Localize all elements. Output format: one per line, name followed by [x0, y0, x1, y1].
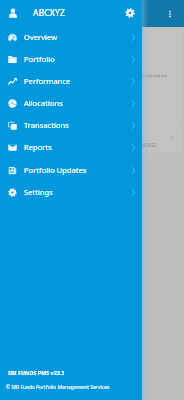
button[interactable]: Performance: [0, 70, 142, 92]
button[interactable]: Reports: [0, 136, 142, 158]
staticText: Portfolio Updates: [24, 165, 87, 175]
staticText: Settings: [24, 187, 53, 197]
button[interactable]: More options: [163, 7, 177, 21]
button[interactable]: Overview: [0, 26, 142, 48]
staticText: 15/08/2022: [133, 142, 157, 148]
button[interactable]: ABCXYZ: [0, 0, 142, 25]
staticText: SBI FUNDS PMS v23.3: [8, 369, 65, 376]
button[interactable]: Portfolio Updates: [0, 159, 142, 181]
button[interactable]: Transactions: [0, 114, 142, 136]
button[interactable]: 15/08/2022: [4, 123, 182, 153]
button[interactable]: Portfolio: [0, 48, 142, 70]
staticText: Transactions: [24, 120, 69, 130]
button[interactable]: Settings: [0, 181, 142, 203]
staticText: Reports: [24, 142, 52, 152]
staticText: Portfolio: [24, 54, 55, 64]
staticText: Overview: [24, 32, 58, 42]
button[interactable]: Settings: [122, 5, 137, 20]
staticText: Cash Equivalent: [135, 72, 168, 78]
staticText: Allocations: [24, 98, 63, 108]
staticText: Performance: [24, 76, 71, 86]
staticText: ABCXYZ: [33, 7, 65, 19]
staticText: © SBI Funds Portfolio Management Service…: [6, 384, 110, 391]
button[interactable]: Allocations: [0, 92, 142, 114]
